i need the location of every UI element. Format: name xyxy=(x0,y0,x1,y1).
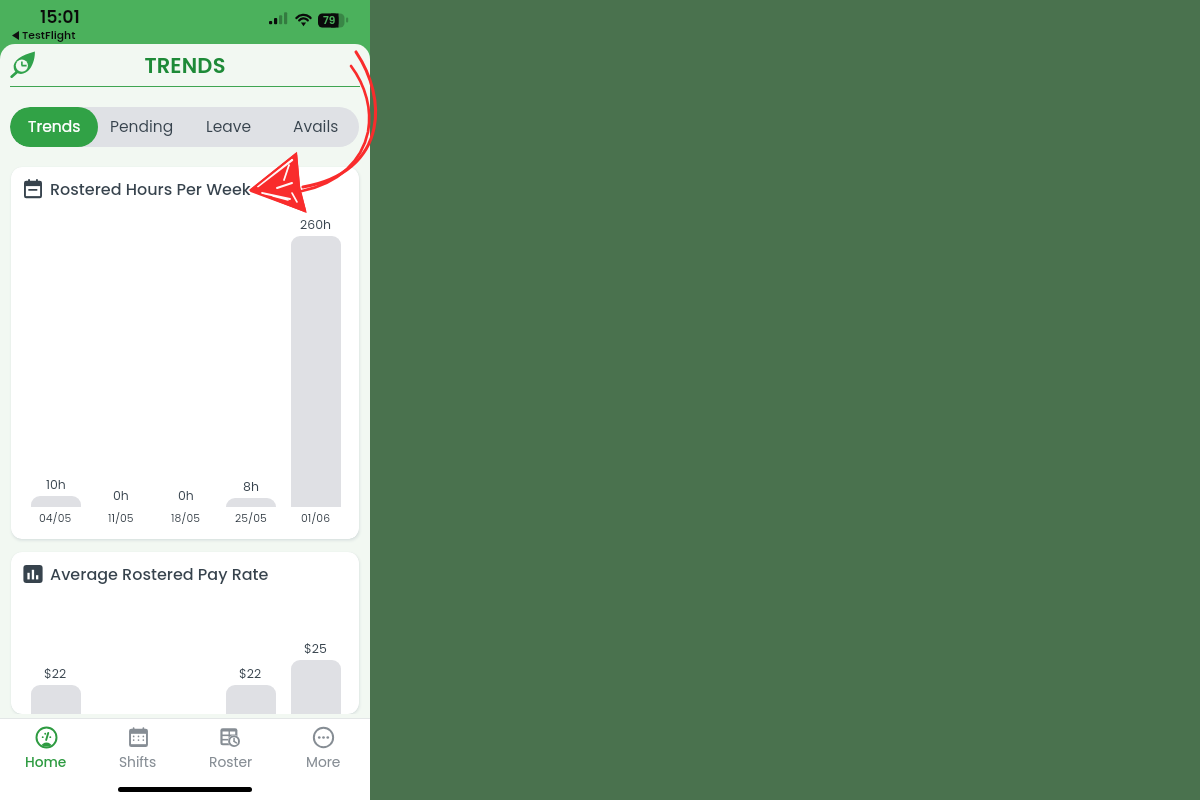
button[interactable]: More xyxy=(277,719,370,779)
staticText: $25 xyxy=(304,640,327,657)
staticText: Shifts xyxy=(119,753,157,772)
staticText: Rostered Hours Per Week xyxy=(50,178,251,200)
button[interactable]: Roster xyxy=(184,719,277,779)
staticText: 79 xyxy=(323,13,336,28)
staticText: 18/05 xyxy=(171,511,200,526)
button[interactable]: App logo xyxy=(10,51,37,78)
staticText: 04/05 xyxy=(39,511,72,526)
button[interactable]: Trends xyxy=(10,107,98,147)
staticText: Leave xyxy=(206,116,252,138)
staticText: 0h xyxy=(113,487,129,504)
button[interactable]: Leave xyxy=(185,107,272,147)
staticText: 15:01 xyxy=(40,5,80,30)
button[interactable]: Average Rostered Pay Rate xyxy=(11,552,359,714)
staticText: $22 xyxy=(239,665,262,682)
staticText: 260h xyxy=(300,216,331,233)
staticText: 25/05 xyxy=(235,511,267,526)
staticText: 0h xyxy=(178,487,194,504)
staticText: Roster xyxy=(209,753,253,772)
staticText: 11/05 xyxy=(108,511,134,526)
staticText: Avails xyxy=(293,116,339,138)
staticText: Pending xyxy=(110,116,174,138)
button[interactable]: Rostered Hours Per Week xyxy=(11,167,359,539)
staticText: Average Rostered Pay Rate xyxy=(50,563,269,585)
staticText: $22 xyxy=(44,665,67,682)
button[interactable]: Pending xyxy=(98,107,185,147)
staticText: 8h xyxy=(243,478,259,495)
button[interactable]: Home xyxy=(0,719,92,779)
staticText: TestFlight xyxy=(22,28,76,43)
button[interactable]: Avails xyxy=(272,107,359,147)
staticText: TRENDS xyxy=(0,51,370,80)
button[interactable]: Shifts xyxy=(92,719,184,779)
staticText: 10h xyxy=(46,476,66,493)
staticText: Trends xyxy=(28,116,81,138)
staticText: 01/06 xyxy=(301,511,331,526)
staticText: Home xyxy=(25,753,67,772)
staticText: More xyxy=(306,753,341,772)
